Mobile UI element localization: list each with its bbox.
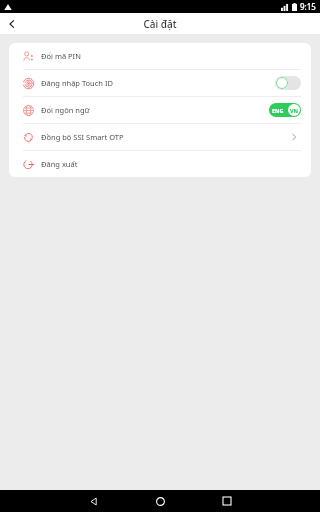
staticText: Đăng nhập Touch ID (41, 78, 113, 88)
staticText: Đồng bộ SSI Smart OTP (41, 132, 124, 142)
staticText: VN (290, 107, 299, 114)
staticText: Đăng xuất (41, 159, 78, 169)
button[interactable]: Đăng nhập Touch ID (9, 70, 311, 96)
staticText: Đổi ngôn ngữ (41, 105, 90, 115)
button[interactable]: Đăng xuất (9, 151, 311, 177)
button[interactable]: Open (287, 130, 301, 144)
button[interactable]: Đồng bộ SSI Smart OTP (9, 124, 311, 150)
button[interactable]: Touch ID toggle (275, 76, 301, 90)
staticText: Đổi mã PIN (41, 51, 81, 61)
button[interactable]: Back (0, 13, 24, 35)
button[interactable]: Back (84, 492, 102, 510)
button[interactable]: Language toggle (269, 103, 301, 117)
button[interactable]: Đổi ngôn ngữ (9, 97, 311, 123)
button[interactable]: Recent apps (218, 492, 236, 510)
staticText: ENG (272, 107, 284, 114)
staticText: 9:15 (300, 1, 316, 12)
button[interactable]: Home (151, 492, 169, 510)
button[interactable]: Đổi mã PIN (9, 43, 311, 69)
staticText: Cài đặt (143, 17, 177, 31)
